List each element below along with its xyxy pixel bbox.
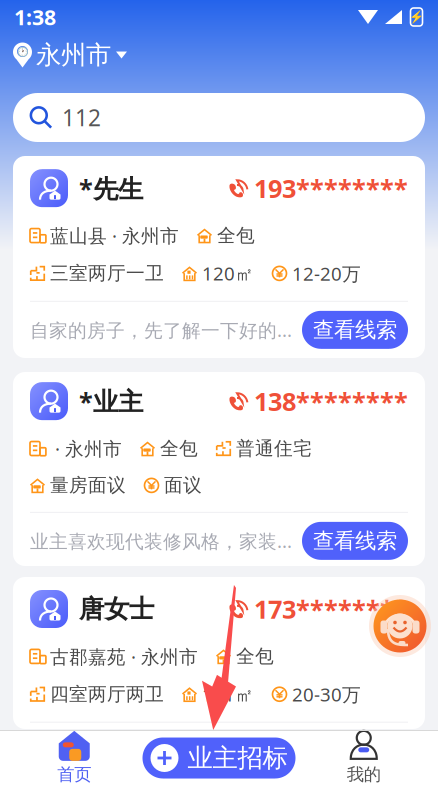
- button[interactable]: 112: [13, 93, 425, 142]
- staticText: *先生: [79, 171, 143, 205]
- staticText: 普通住宅: [236, 437, 312, 460]
- staticText: 业主招标: [187, 742, 287, 773]
- button[interactable]: 业主招标: [142, 737, 295, 778]
- staticText: 业主喜欢现代装修风格，家装，正…: [30, 528, 296, 553]
- staticText: 蓝山县 · 永州市: [50, 223, 179, 248]
- staticText: 我的: [347, 764, 381, 785]
- staticText: 全包: [236, 645, 274, 668]
- staticText: 四室两厅两卫: [50, 683, 164, 706]
- button[interactable]: 我的: [295, 731, 432, 785]
- staticText: 面议: [164, 474, 202, 497]
- staticText: 查看线索: [313, 317, 397, 343]
- staticText: 自家的房子，先了解一下好的装修…: [30, 317, 296, 342]
- staticText: 120㎡: [202, 261, 254, 286]
- staticText: 首页: [57, 764, 91, 785]
- staticText: 查看线索: [313, 528, 397, 554]
- staticText: 全包: [160, 437, 198, 460]
- button[interactable]: 🕐: [0, 40, 140, 70]
- staticText: · 永州市: [50, 436, 122, 461]
- staticText: 全包: [217, 224, 255, 247]
- staticText: 193********: [254, 171, 408, 205]
- staticText: 量房面议: [50, 474, 126, 497]
- button[interactable]: 首页: [6, 731, 142, 785]
- staticText: 1:38: [14, 3, 56, 31]
- staticText: ⚡: [409, 10, 424, 24]
- staticText: 🕐: [16, 46, 28, 57]
- staticText: 138********: [254, 384, 408, 418]
- button[interactable]: 客服: [368, 594, 432, 658]
- button[interactable]: 查看线索: [302, 311, 408, 349]
- button[interactable]: 查看线索: [302, 522, 408, 560]
- staticText: 永州市: [36, 39, 111, 70]
- staticText: 三室两厅一卫: [50, 262, 164, 285]
- staticText: 141㎡: [202, 682, 254, 707]
- staticText: 古郡嘉苑 · 永州市: [50, 644, 198, 669]
- staticText: 唐女士: [79, 593, 154, 624]
- staticText: 112: [62, 102, 101, 132]
- staticText: 12-20万: [292, 261, 361, 286]
- staticText: *业主: [79, 384, 143, 418]
- staticText: 20-30万: [292, 682, 361, 707]
- staticText: 173********: [254, 592, 408, 626]
